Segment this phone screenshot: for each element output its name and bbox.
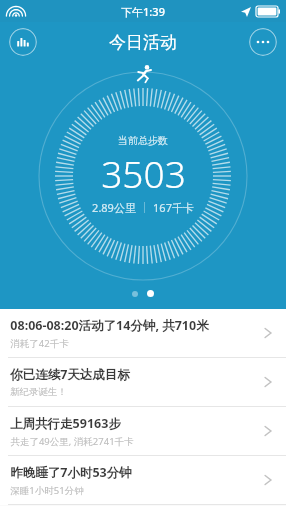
staticText: 下午1:39 bbox=[121, 4, 165, 19]
button[interactable]: 更多 bbox=[249, 28, 277, 56]
button[interactable]: 08:06-08:20活动了14分钟, 共710米 bbox=[0, 309, 286, 357]
staticText: 3503 bbox=[101, 148, 186, 198]
staticText: 上周共行走59163步 bbox=[10, 415, 121, 432]
staticText: 昨晚睡了7小时53分钟 bbox=[10, 464, 132, 481]
staticText: 当前总步数 bbox=[118, 134, 168, 147]
staticText: 新纪录诞生！ bbox=[10, 386, 67, 398]
staticText: 深睡1小时51分钟 bbox=[10, 484, 84, 497]
staticText: 你已连续7天达成目标 bbox=[10, 366, 130, 383]
staticText: 08:06-08:20活动了14分钟, 共710米 bbox=[10, 317, 209, 334]
staticText: 2.89公里 bbox=[92, 200, 136, 215]
staticText: 167千卡 bbox=[153, 200, 194, 215]
button[interactable]: 上周共行走59163步 bbox=[0, 407, 286, 455]
staticText: 共走了49公里, 消耗2741千卡 bbox=[10, 435, 134, 448]
button[interactable]: 统计 bbox=[9, 28, 37, 56]
button[interactable]: 你已连续7天达成目标 bbox=[0, 358, 286, 406]
staticText: 消耗了42千卡 bbox=[10, 337, 69, 350]
button[interactable]: 昨晚睡了7小时53分钟 bbox=[0, 456, 286, 504]
staticText: 今日活动 bbox=[109, 32, 177, 53]
